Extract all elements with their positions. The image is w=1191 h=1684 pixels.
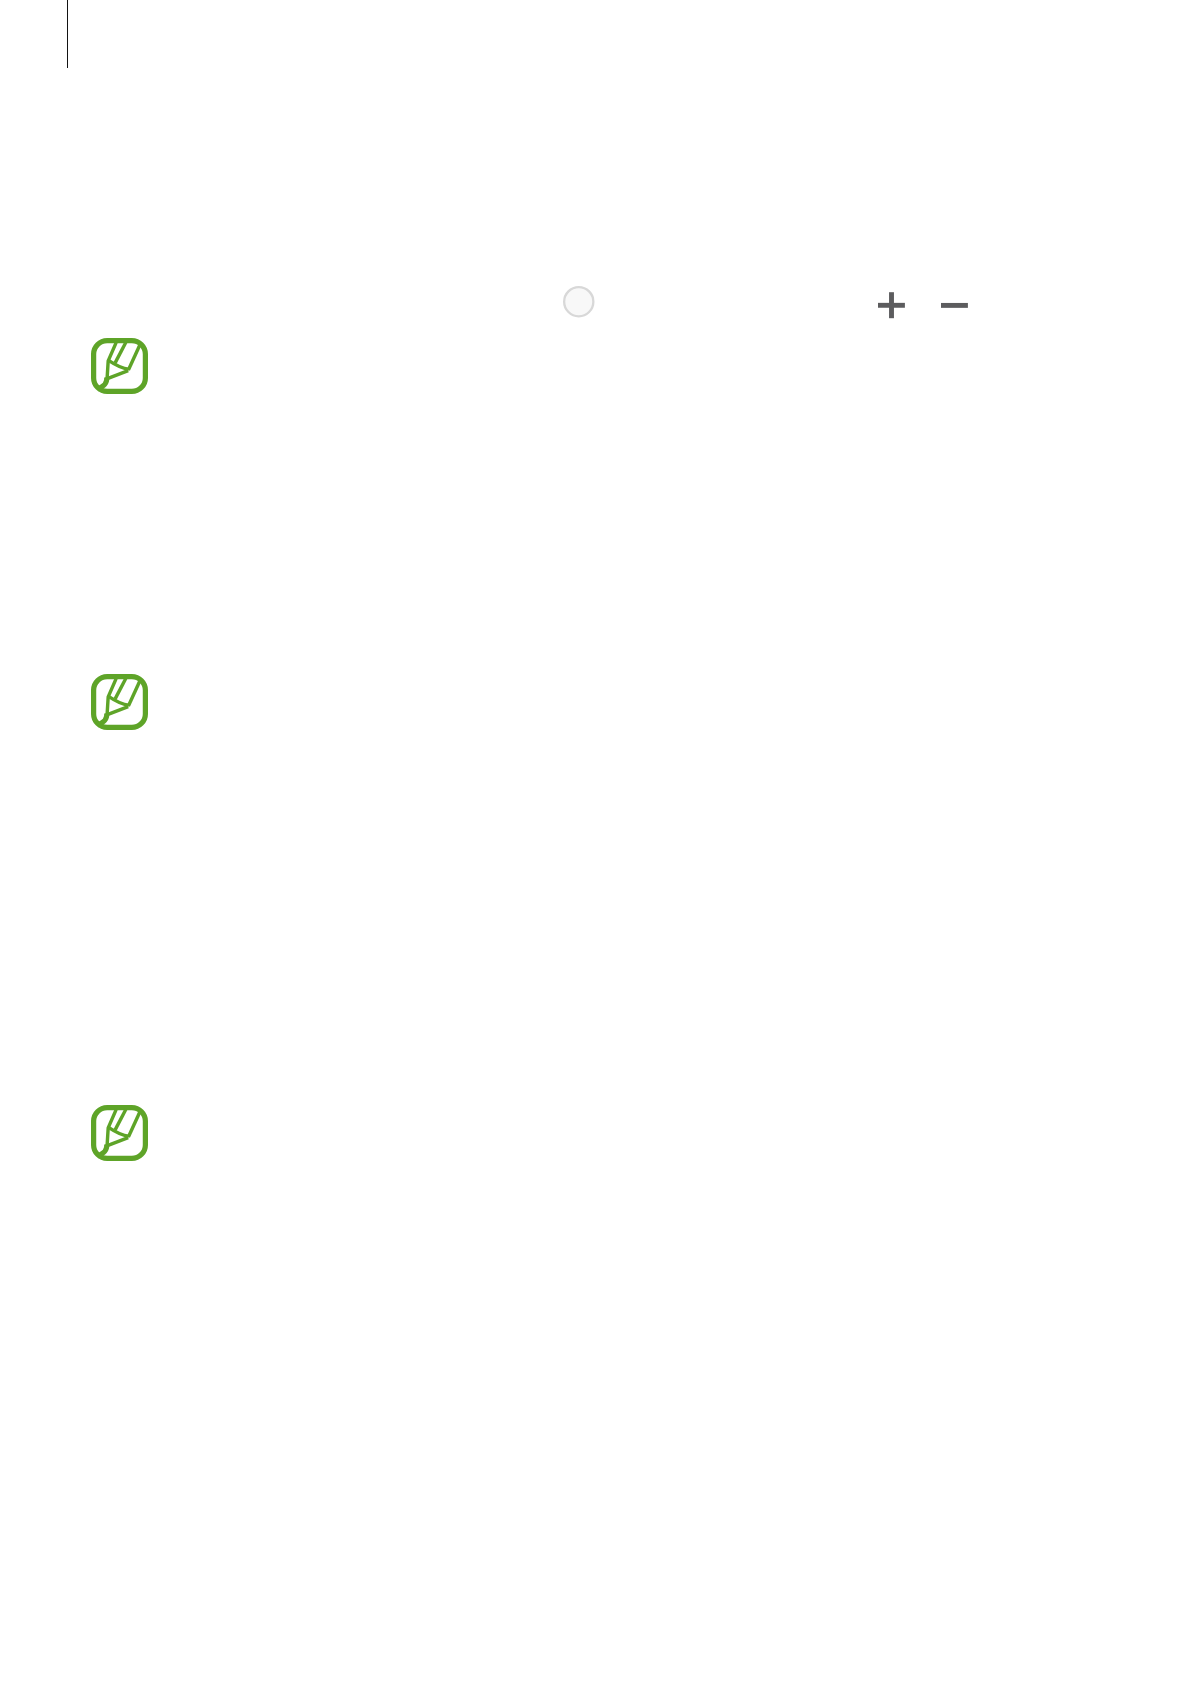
button[interactable]: S Note xyxy=(91,1105,148,1161)
button[interactable]: Zoom out xyxy=(937,288,973,324)
button[interactable]: Zoom in xyxy=(874,288,910,324)
button[interactable]: S Note xyxy=(91,338,148,394)
button[interactable]: S Note xyxy=(91,674,148,730)
